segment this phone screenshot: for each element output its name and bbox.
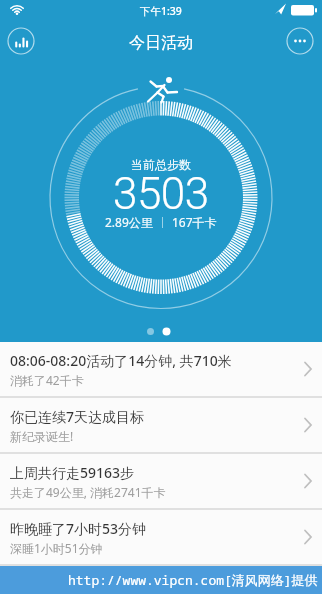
staticText: 你已连续7天达成目标 [10, 407, 145, 426]
staticText: 消耗了42千卡 [10, 372, 84, 388]
staticText: 167千卡 [172, 214, 217, 230]
staticText: http://www.vipcn.com[清风网络]提供 [68, 571, 318, 589]
button[interactable]: 昨晚睡了7小时53分钟 [0, 510, 322, 564]
staticText: 2.89公里 [105, 214, 153, 230]
button[interactable] [6, 26, 36, 56]
staticText: 深睡1小时51分钟 [10, 540, 103, 556]
staticText: 3503 [113, 168, 209, 220]
button[interactable]: http://www.vipcn.com[清风网络]提供 [0, 566, 322, 594]
staticText: 当前总步数 [131, 157, 191, 172]
button[interactable]: 08:06-08:20活动了14分钟, 共710米 [0, 342, 322, 396]
staticText: 下午1:39 [140, 4, 182, 18]
staticText: 今日活动 [129, 33, 193, 53]
staticText: 昨晚睡了7小时53分钟 [10, 519, 147, 538]
staticText: 08:06-08:20活动了14分钟, 共710米 [10, 351, 232, 370]
button[interactable]: 你已连续7天达成目标 [0, 398, 322, 452]
staticText: 新纪录诞生! [10, 428, 74, 444]
button[interactable]: 上周共行走59163步 [0, 454, 322, 508]
staticText: 上周共行走59163步 [10, 463, 135, 482]
button[interactable] [284, 26, 314, 56]
staticText: 共走了49公里, 消耗2741千卡 [10, 484, 166, 500]
